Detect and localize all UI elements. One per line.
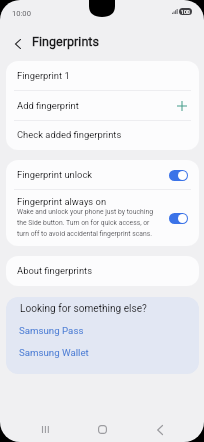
- staticText: Looking for something else?: [20, 303, 147, 315]
- staticText: Check added fingerprints: [17, 129, 188, 140]
- button[interactable]: Add fingerprint: [6, 91, 199, 121]
- staticText: Wake and unlock your phone just by touch…: [17, 208, 158, 238]
- button[interactable]: Home: [88, 415, 117, 442]
- button[interactable]: Samsung Pass: [19, 325, 84, 336]
- staticText: Add fingerprint: [17, 100, 178, 111]
- button[interactable]: Samsung Wallet: [19, 347, 89, 358]
- button[interactable]: Fingerprint unlock: [6, 160, 199, 190]
- staticText: 10:00: [12, 9, 31, 18]
- staticText: 100: [181, 9, 190, 15]
- button[interactable]: Check added fingerprints: [6, 121, 199, 150]
- button[interactable]: About fingerprints: [6, 256, 199, 286]
- staticText: Fingerprint always on: [17, 196, 107, 207]
- staticText: Fingerprint unlock: [17, 169, 169, 180]
- button[interactable]: Recent apps: [31, 415, 60, 442]
- staticText: About fingerprints: [17, 265, 188, 276]
- staticText: Fingerprint 1: [17, 70, 188, 81]
- button[interactable]: Fingerprint always on: [6, 190, 199, 246]
- button[interactable]: Back: [145, 415, 174, 442]
- staticText: Fingerprints: [32, 34, 99, 49]
- button[interactable]: Navigate up: [9, 34, 27, 53]
- button[interactable]: Fingerprint 1: [6, 61, 199, 91]
